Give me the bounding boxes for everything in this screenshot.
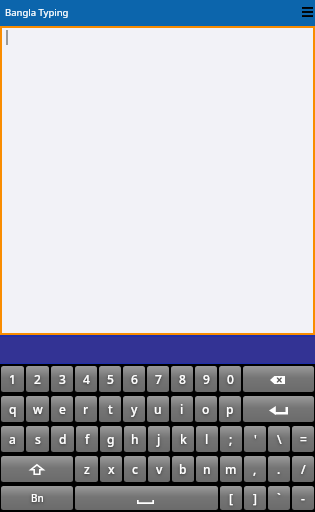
staticText: c [132, 461, 138, 477]
button[interactable]: Shift [1, 456, 73, 482]
button[interactable]: f [76, 426, 98, 452]
button[interactable]: w [26, 396, 49, 422]
staticText: 7 [155, 371, 162, 387]
staticText: p [226, 401, 234, 417]
button[interactable]: a [1, 426, 24, 452]
staticText: = [300, 431, 307, 447]
staticText: a [9, 431, 16, 447]
button[interactable]: ; [220, 426, 242, 452]
staticText: 3 [59, 371, 66, 387]
button[interactable]: c [124, 456, 146, 482]
staticText: 9 [203, 371, 210, 387]
button[interactable]: [ [220, 486, 242, 510]
button[interactable]: g [100, 426, 122, 452]
staticText: 2 [34, 371, 41, 387]
button[interactable]: Space [75, 486, 218, 510]
button[interactable]: 5 [99, 366, 121, 392]
button[interactable]: j [148, 426, 170, 452]
other: Enter [269, 406, 288, 415]
staticText: f [85, 431, 90, 447]
staticText: \ [277, 431, 282, 447]
button[interactable]: / [292, 456, 314, 482]
staticText: i [180, 401, 184, 417]
button[interactable]: 8 [171, 366, 193, 392]
staticText: x [108, 461, 115, 477]
button[interactable]: 4 [75, 366, 97, 392]
button[interactable]: o [195, 396, 217, 422]
button[interactable]: v [148, 456, 170, 482]
button[interactable]: = [292, 426, 314, 452]
button[interactable]: y [123, 396, 145, 422]
staticText: w [33, 401, 43, 417]
button[interactable]: s [26, 426, 49, 452]
staticText: h [131, 431, 139, 447]
button[interactable]: 6 [123, 366, 145, 392]
staticText: e [59, 401, 66, 417]
button[interactable]: Backspace [243, 366, 314, 392]
button[interactable]: n [196, 456, 218, 482]
button[interactable]: q [1, 396, 24, 422]
staticText: ; [229, 431, 233, 447]
staticText: ] [253, 490, 257, 506]
staticText: Bn [31, 491, 44, 505]
button[interactable]: b [172, 456, 194, 482]
staticText: ' [254, 431, 257, 447]
button[interactable]: z [75, 456, 98, 482]
button[interactable]: ' [244, 426, 266, 452]
staticText: d [59, 431, 67, 447]
button[interactable]: e [51, 396, 73, 422]
button[interactable]: k [172, 426, 194, 452]
button[interactable]: 7 [147, 366, 169, 392]
other: Space [137, 500, 154, 504]
button[interactable]: Enter [243, 396, 314, 422]
button[interactable]: 1 [1, 366, 24, 392]
staticText: o [202, 401, 210, 417]
button[interactable]: . [268, 456, 290, 482]
button[interactable]: Menu [291, 1, 315, 25]
button[interactable]: h [124, 426, 146, 452]
staticText: Bangla Typing [5, 6, 69, 19]
button[interactable]: Bn [1, 486, 73, 510]
other: Shift [30, 464, 44, 475]
staticText: m [225, 461, 237, 477]
staticText: 4 [83, 371, 90, 387]
button[interactable]: m [220, 456, 242, 482]
button[interactable]: u [147, 396, 169, 422]
button[interactable]: - [292, 486, 314, 510]
button[interactable]: 2 [26, 366, 49, 392]
button[interactable]: l [196, 426, 218, 452]
button[interactable]: , [244, 456, 266, 482]
button[interactable]: 3 [51, 366, 73, 392]
staticText: g [107, 431, 115, 447]
button[interactable]: i [171, 396, 193, 422]
button[interactable]: ` [268, 486, 290, 510]
staticText: v [156, 461, 163, 477]
staticText: 5 [107, 371, 114, 387]
staticText: 0 [227, 371, 234, 387]
staticText: [ [229, 490, 233, 506]
button[interactable]: p [219, 396, 241, 422]
button[interactable]: 0 [219, 366, 241, 392]
staticText: n [203, 461, 211, 477]
staticText: / [301, 461, 306, 477]
staticText: - [301, 490, 305, 506]
staticText: b [179, 461, 187, 477]
button[interactable]: r [75, 396, 97, 422]
staticText: ` [277, 490, 281, 506]
staticText: y [131, 401, 138, 417]
staticText: l [205, 431, 209, 447]
button[interactable]: t [99, 396, 121, 422]
staticText: z [84, 461, 90, 477]
other: Backspace [270, 376, 285, 384]
button[interactable]: 9 [195, 366, 217, 392]
staticText: 6 [131, 371, 138, 387]
button[interactable]: d [51, 426, 74, 452]
staticText: . [277, 461, 281, 477]
button[interactable]: x [100, 456, 122, 482]
staticText: , [253, 461, 257, 477]
staticText: k [180, 431, 187, 447]
staticText: 8 [179, 371, 186, 387]
button[interactable]: ] [244, 486, 266, 510]
button[interactable]: \ [268, 426, 290, 452]
